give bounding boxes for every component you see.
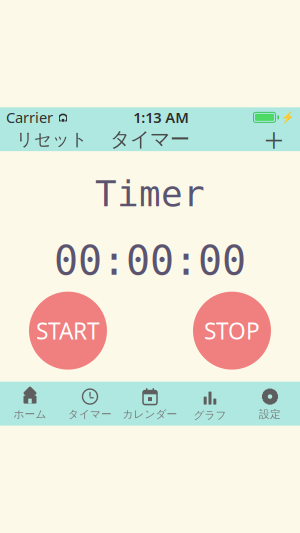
button[interactable]: グラフ [180,383,240,425]
button[interactable]: ホーム [0,384,60,424]
staticText: 設定 [259,408,281,421]
staticText: START [36,316,100,346]
staticText: グラフ [193,409,226,422]
staticText: Carrier [6,108,53,127]
staticText: ⚡ [281,111,294,123]
button[interactable]: 設定 [240,384,300,424]
staticText: タイマー [110,127,190,152]
staticText: 00:00:00 [54,238,246,284]
staticText: Timer [95,173,205,214]
button[interactable]: START [29,292,107,370]
button[interactable]: カレンダー [120,384,180,424]
staticText: ホーム [13,408,46,421]
staticText: + [264,116,284,162]
button[interactable]: STOP [193,292,271,370]
staticText: タイマー [68,408,112,421]
staticText: カレンダー [122,408,177,421]
staticText: リセット [16,129,88,150]
staticText: 1:13 AM [133,108,189,127]
staticText: STOP [204,316,260,346]
button[interactable]: リセット [6,123,98,156]
button[interactable]: タイマー [60,384,120,424]
button[interactable]: Add [254,116,294,162]
